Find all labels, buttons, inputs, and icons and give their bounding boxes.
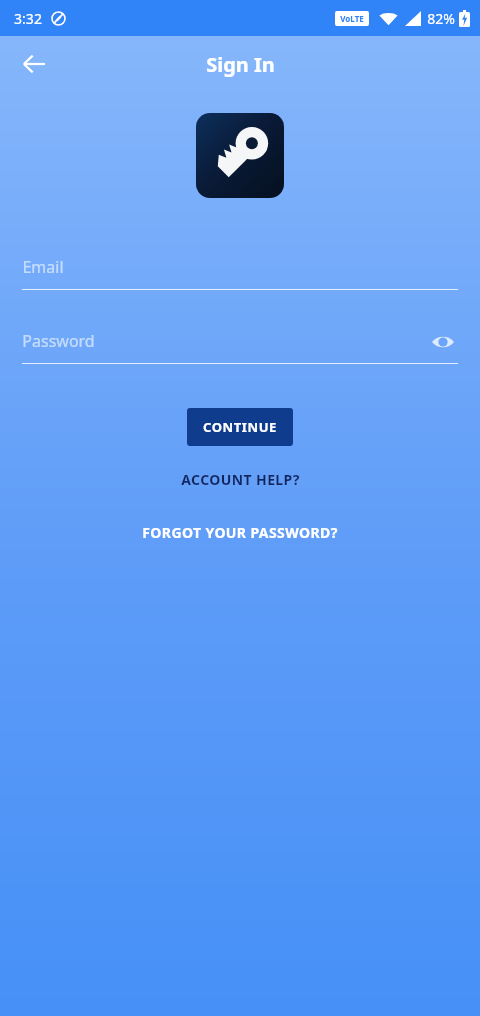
staticText: CONTINUE [203,418,277,436]
staticText: ACCOUNT HELP? [181,470,300,489]
button[interactable]: ACCOUNT HELP? [169,467,312,492]
button[interactable]: Email [22,250,458,290]
staticText: VoLTE [340,13,364,24]
button[interactable]: Password [22,324,458,364]
button[interactable]: Show password [428,327,458,357]
staticText: 82% [427,9,455,28]
staticText: Password [22,330,95,352]
staticText: Email [22,256,64,278]
button[interactable]: CONTINUE [187,408,293,446]
button[interactable]: Back [10,40,58,88]
staticText: Sign In [206,51,275,78]
staticText: 3:32 [14,9,42,28]
button[interactable]: FORGOT YOUR PASSWORD? [130,520,350,545]
staticText: FORGOT YOUR PASSWORD? [142,523,338,542]
